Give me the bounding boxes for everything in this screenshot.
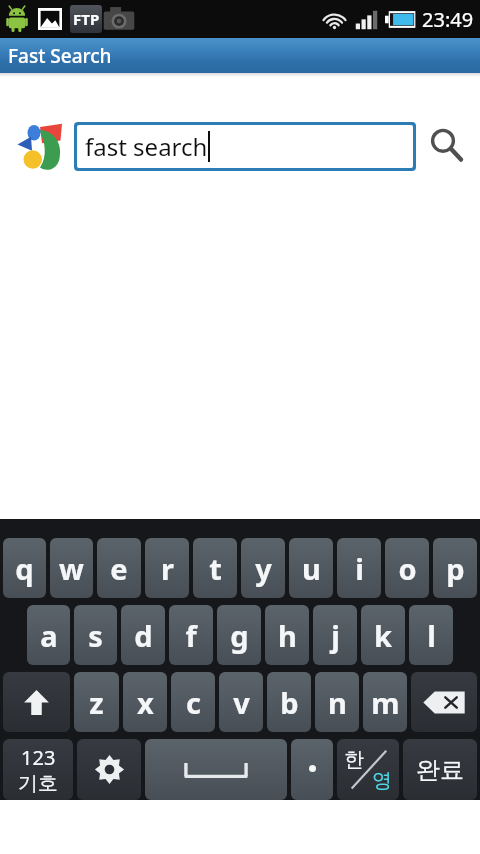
button[interactable]: fast search [77, 125, 413, 168]
staticText: a [40, 616, 58, 655]
staticText: d [134, 616, 153, 655]
staticText: s [88, 616, 103, 655]
button[interactable]: x [123, 672, 167, 732]
staticText: e [110, 549, 128, 588]
button[interactable]: r [145, 538, 189, 598]
staticText: y [255, 549, 272, 588]
staticText: i [355, 549, 364, 588]
button[interactable]: i [337, 538, 381, 598]
button[interactable]: z [74, 672, 119, 732]
staticText: h [278, 616, 297, 655]
button[interactable]: m [363, 672, 407, 732]
button[interactable]: n [315, 672, 359, 732]
staticText: k [374, 616, 392, 655]
staticText: w [59, 549, 84, 588]
button[interactable]: u [289, 538, 333, 598]
button[interactable]: b [267, 672, 311, 732]
staticText: x [137, 683, 154, 722]
staticText: r [161, 549, 174, 588]
button[interactable]: e [97, 538, 141, 598]
button[interactable]: k [361, 605, 405, 665]
button[interactable]: l [409, 605, 453, 665]
staticText: c [186, 683, 201, 722]
staticText: t [209, 549, 222, 588]
button[interactable]: Search [424, 123, 470, 169]
button[interactable]: Settings [77, 739, 141, 800]
staticText: o [398, 549, 417, 588]
button[interactable]: c [171, 672, 215, 732]
button[interactable]: w [50, 538, 93, 598]
staticText: FTP [73, 9, 100, 29]
staticText: p [446, 549, 465, 588]
button[interactable]: y [241, 538, 285, 598]
staticText: fast search [85, 130, 208, 163]
button[interactable]: d [121, 605, 165, 665]
staticText: 영 [372, 768, 392, 793]
button[interactable]: t [193, 538, 237, 598]
staticText: b [280, 683, 299, 722]
button[interactable]: Period [291, 739, 333, 800]
button[interactable]: Language [337, 739, 399, 800]
button[interactable]: Backspace [411, 672, 477, 732]
button[interactable]: Symbols [3, 739, 73, 800]
button[interactable]: p [433, 538, 477, 598]
button[interactable]: o [385, 538, 429, 598]
button[interactable]: Shift [3, 672, 70, 732]
staticText: Fast Search [8, 43, 112, 69]
staticText: 한 [344, 747, 364, 772]
staticText: l [427, 616, 436, 655]
staticText: z [89, 683, 104, 722]
staticText: g [230, 616, 249, 655]
button[interactable]: Done [403, 739, 477, 800]
staticText: f [185, 616, 197, 655]
button[interactable]: h [265, 605, 309, 665]
button[interactable]: g [217, 605, 261, 665]
button[interactable]: Space [145, 739, 287, 800]
staticText: 23:49 [422, 6, 474, 33]
staticText: q [15, 549, 34, 588]
staticText: 123 [21, 744, 56, 771]
staticText: m [371, 683, 400, 722]
button[interactable]: q [3, 538, 46, 598]
staticText: v [233, 683, 250, 722]
button[interactable]: v [219, 672, 263, 732]
button[interactable]: f [169, 605, 213, 665]
button[interactable]: a [27, 605, 70, 665]
staticText: n [328, 683, 347, 722]
staticText: 기호 [18, 771, 58, 796]
staticText: 완료 [416, 755, 464, 785]
staticText: u [302, 549, 321, 588]
staticText: j [331, 616, 340, 655]
button[interactable]: j [313, 605, 357, 665]
button[interactable]: s [74, 605, 117, 665]
